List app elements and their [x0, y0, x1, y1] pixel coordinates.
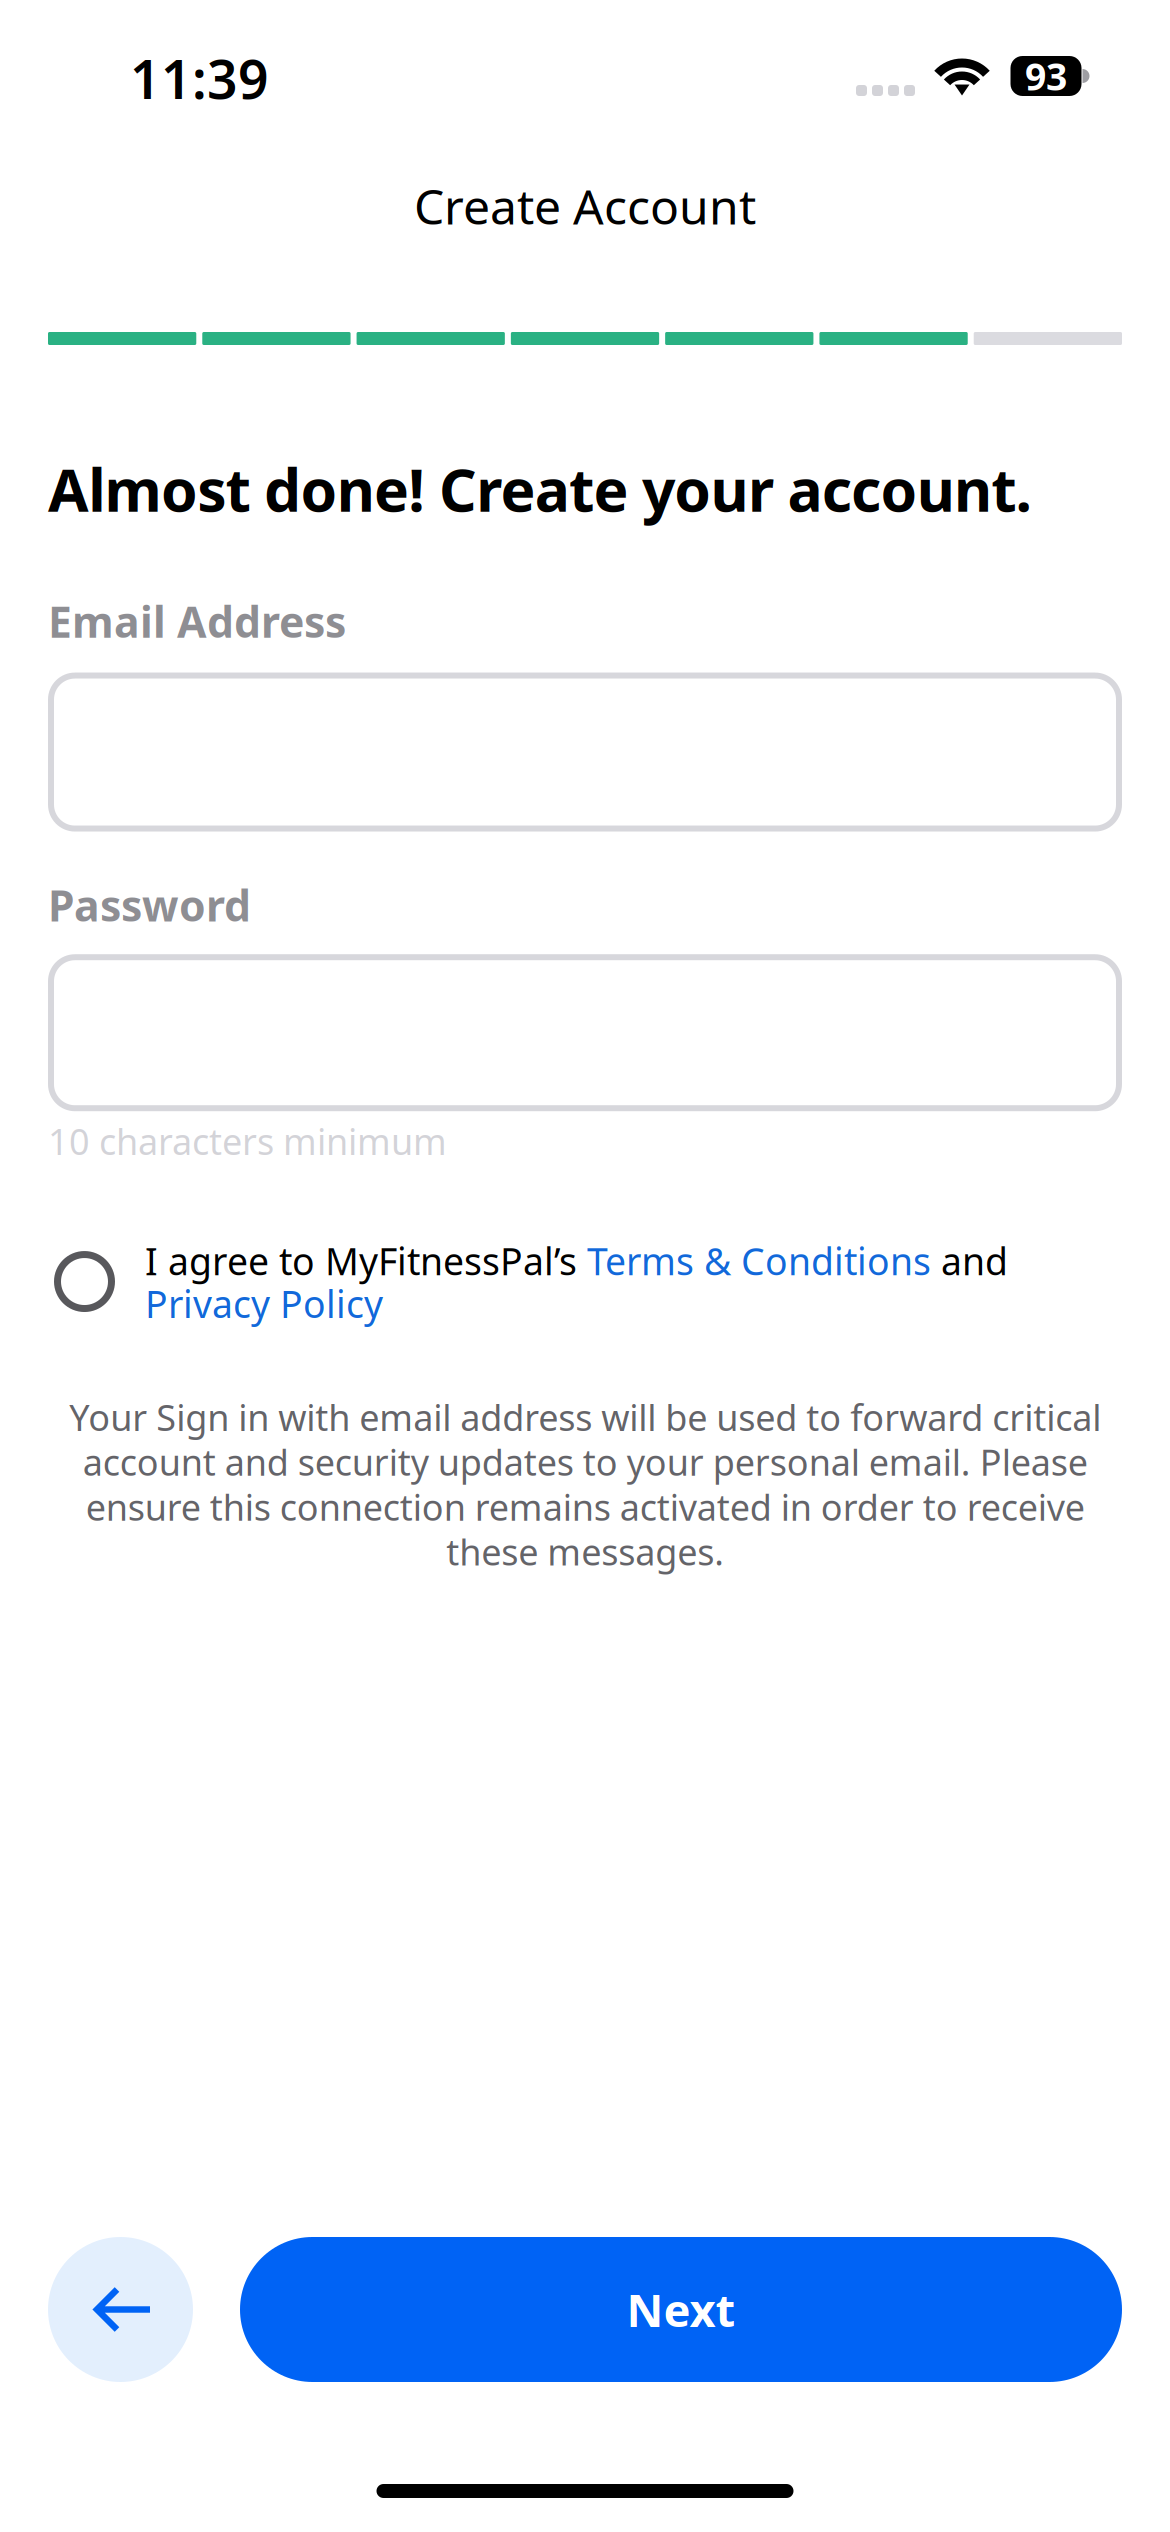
staticText: I agree to MyFitnessPal’s	[145, 1236, 587, 1286]
staticText: Your Sign in with email address will be …	[69, 1393, 1101, 1575]
staticText: Email Address	[48, 593, 346, 650]
staticText: and	[931, 1236, 1008, 1286]
staticText: Next	[626, 2279, 735, 2340]
button[interactable]: Back	[48, 2237, 193, 2382]
staticText: 93	[1025, 51, 1067, 101]
staticText: Create Account	[414, 174, 756, 238]
button[interactable]: Next	[240, 2237, 1122, 2382]
staticText: Almost done! Create your account.	[48, 450, 1032, 528]
button[interactable]: Create Account	[414, 96, 756, 316]
button[interactable]: I agree to MyFitnessPal’s	[0, 1245, 1170, 1337]
staticText: 11:39	[130, 43, 269, 114]
staticText: Terms & Conditions	[587, 1236, 931, 1286]
staticText: 10 characters minimum	[48, 1117, 447, 1165]
staticText: Privacy Policy	[145, 1279, 383, 1328]
staticText: Password	[48, 877, 251, 933]
